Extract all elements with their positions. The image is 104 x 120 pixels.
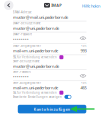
- staticText: IMAP-Passwort: [13, 32, 32, 36]
- button[interactable]: Passwort anzeigen: [80, 74, 86, 78]
- staticText: E-Mail-Adresse: [13, 10, 32, 14]
- staticText: Konto hinzufügen: [33, 106, 70, 112]
- staticText: ••••••••: [13, 37, 29, 42]
- staticText: mail-vm.uni-paderborn.de: [13, 48, 58, 53]
- staticText: Port: [80, 81, 86, 84]
- staticText: muster@mail.uni-paderborn.de: [13, 15, 68, 20]
- button[interactable]: Erweiterte Einstellungen anzeigen: [13, 95, 71, 99]
- button[interactable]: SMTP-Benutzername: [13, 59, 59, 69]
- staticText: muster@uni-paderborn.de: [13, 64, 59, 69]
- button[interactable]: SMTP-Ausgangsserver: [13, 81, 58, 90]
- button[interactable]: SMTP-Passwort: [13, 70, 31, 79]
- button[interactable]: Zurück: [4, 1, 13, 10]
- staticText: ••••••••: [13, 74, 29, 79]
- button[interactable]: Hilfe holen: [82, 3, 100, 8]
- button[interactable]: SSL für Verbindung verwenden: [13, 91, 63, 95]
- staticText: IMAP: [51, 3, 61, 8]
- staticText: SMTP-Ausgangsserver: [13, 81, 41, 84]
- staticText: Port: [80, 44, 86, 47]
- staticText: IMAP-Eingangsserver: [13, 44, 41, 47]
- staticText: SMTP-Benutzername: [13, 59, 40, 63]
- staticText: IMAP-Benutzername: [13, 21, 41, 25]
- staticText: SSL für Verbindung verwenden: [13, 55, 57, 59]
- staticText: SMTP-Passwort: [13, 70, 31, 73]
- button[interactable]: Passwort anzeigen: [80, 36, 86, 40]
- staticText: Hilfe holen: [82, 3, 100, 8]
- button[interactable]: IMAP-Eingangsserver: [13, 44, 58, 53]
- staticText: muster@uni-paderborn.de: [13, 26, 59, 31]
- button[interactable]: SSL für Verbindung verwenden: [13, 55, 63, 59]
- staticText: Erweiterte Einstellungen anzeigen: [13, 95, 62, 99]
- staticText: 465: [80, 85, 86, 90]
- button[interactable]: IMAP-Benutzername: [13, 21, 59, 31]
- button[interactable]: IMAP-Passwort: [13, 32, 32, 42]
- button[interactable]: Konto hinzufügen: [18, 105, 86, 113]
- staticText: SSL für Verbindung verwenden: [13, 91, 57, 94]
- staticText: mail-vm.uni-paderborn.de: [13, 85, 58, 90]
- staticText: 993: [80, 48, 86, 53]
- button[interactable]: E-Mail-Adresse: [13, 10, 68, 20]
